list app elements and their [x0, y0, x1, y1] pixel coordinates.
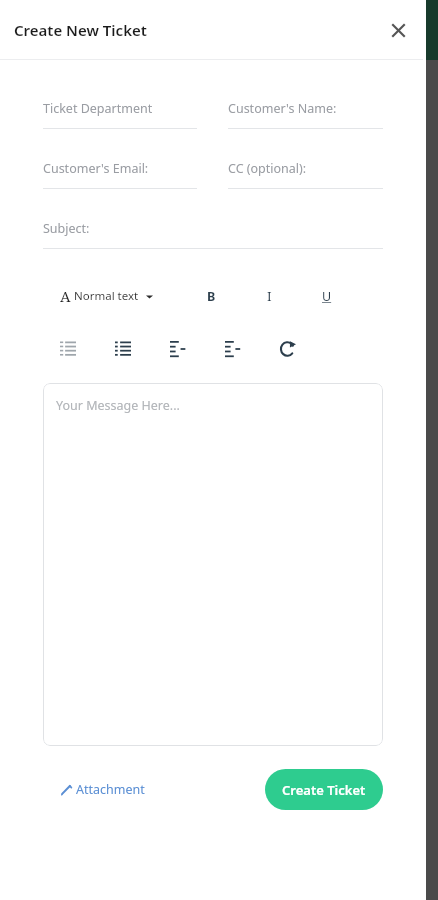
button[interactable]: Bulleted list [110, 336, 136, 362]
staticText: Attachment [76, 781, 145, 798]
staticText: Create Ticket [282, 781, 366, 799]
button[interactable]: Italic [259, 286, 279, 306]
staticText: B [207, 288, 216, 305]
button[interactable]: CC (optional): [228, 160, 383, 189]
staticText: Subject: [43, 220, 90, 237]
button[interactable]: Insert link [275, 336, 301, 362]
button[interactable]: Create Ticket [265, 769, 383, 810]
staticText: Customer's Email: [43, 160, 149, 177]
button[interactable]: Bold [201, 286, 221, 306]
staticText: Create New Ticket [14, 20, 147, 40]
button[interactable]: Ticket Department [43, 100, 197, 129]
button[interactable]: Attachment [60, 781, 145, 798]
button[interactable]: Customer's Name: [228, 100, 383, 129]
button[interactable]: Your Message Here... [43, 383, 383, 746]
staticText: U [322, 288, 332, 305]
button[interactable]: Increase indent [165, 336, 191, 362]
staticText: Ticket Department [43, 100, 153, 117]
button[interactable]: Subject: [43, 220, 383, 249]
button[interactable]: Underline [317, 286, 337, 306]
staticText: I [267, 288, 272, 305]
staticText: Your Message Here... [56, 397, 180, 414]
button[interactable]: Customer's Email: [43, 160, 197, 189]
staticText: Normal text [74, 288, 139, 304]
staticText: CC (optional): [228, 160, 307, 177]
staticText: A [60, 286, 71, 306]
button[interactable]: A [60, 286, 153, 306]
button[interactable]: Decrease indent [220, 336, 246, 362]
staticText: Customer's Name: [228, 100, 337, 117]
button[interactable]: Numbered list [55, 336, 81, 362]
button[interactable]: Close [381, 13, 415, 47]
